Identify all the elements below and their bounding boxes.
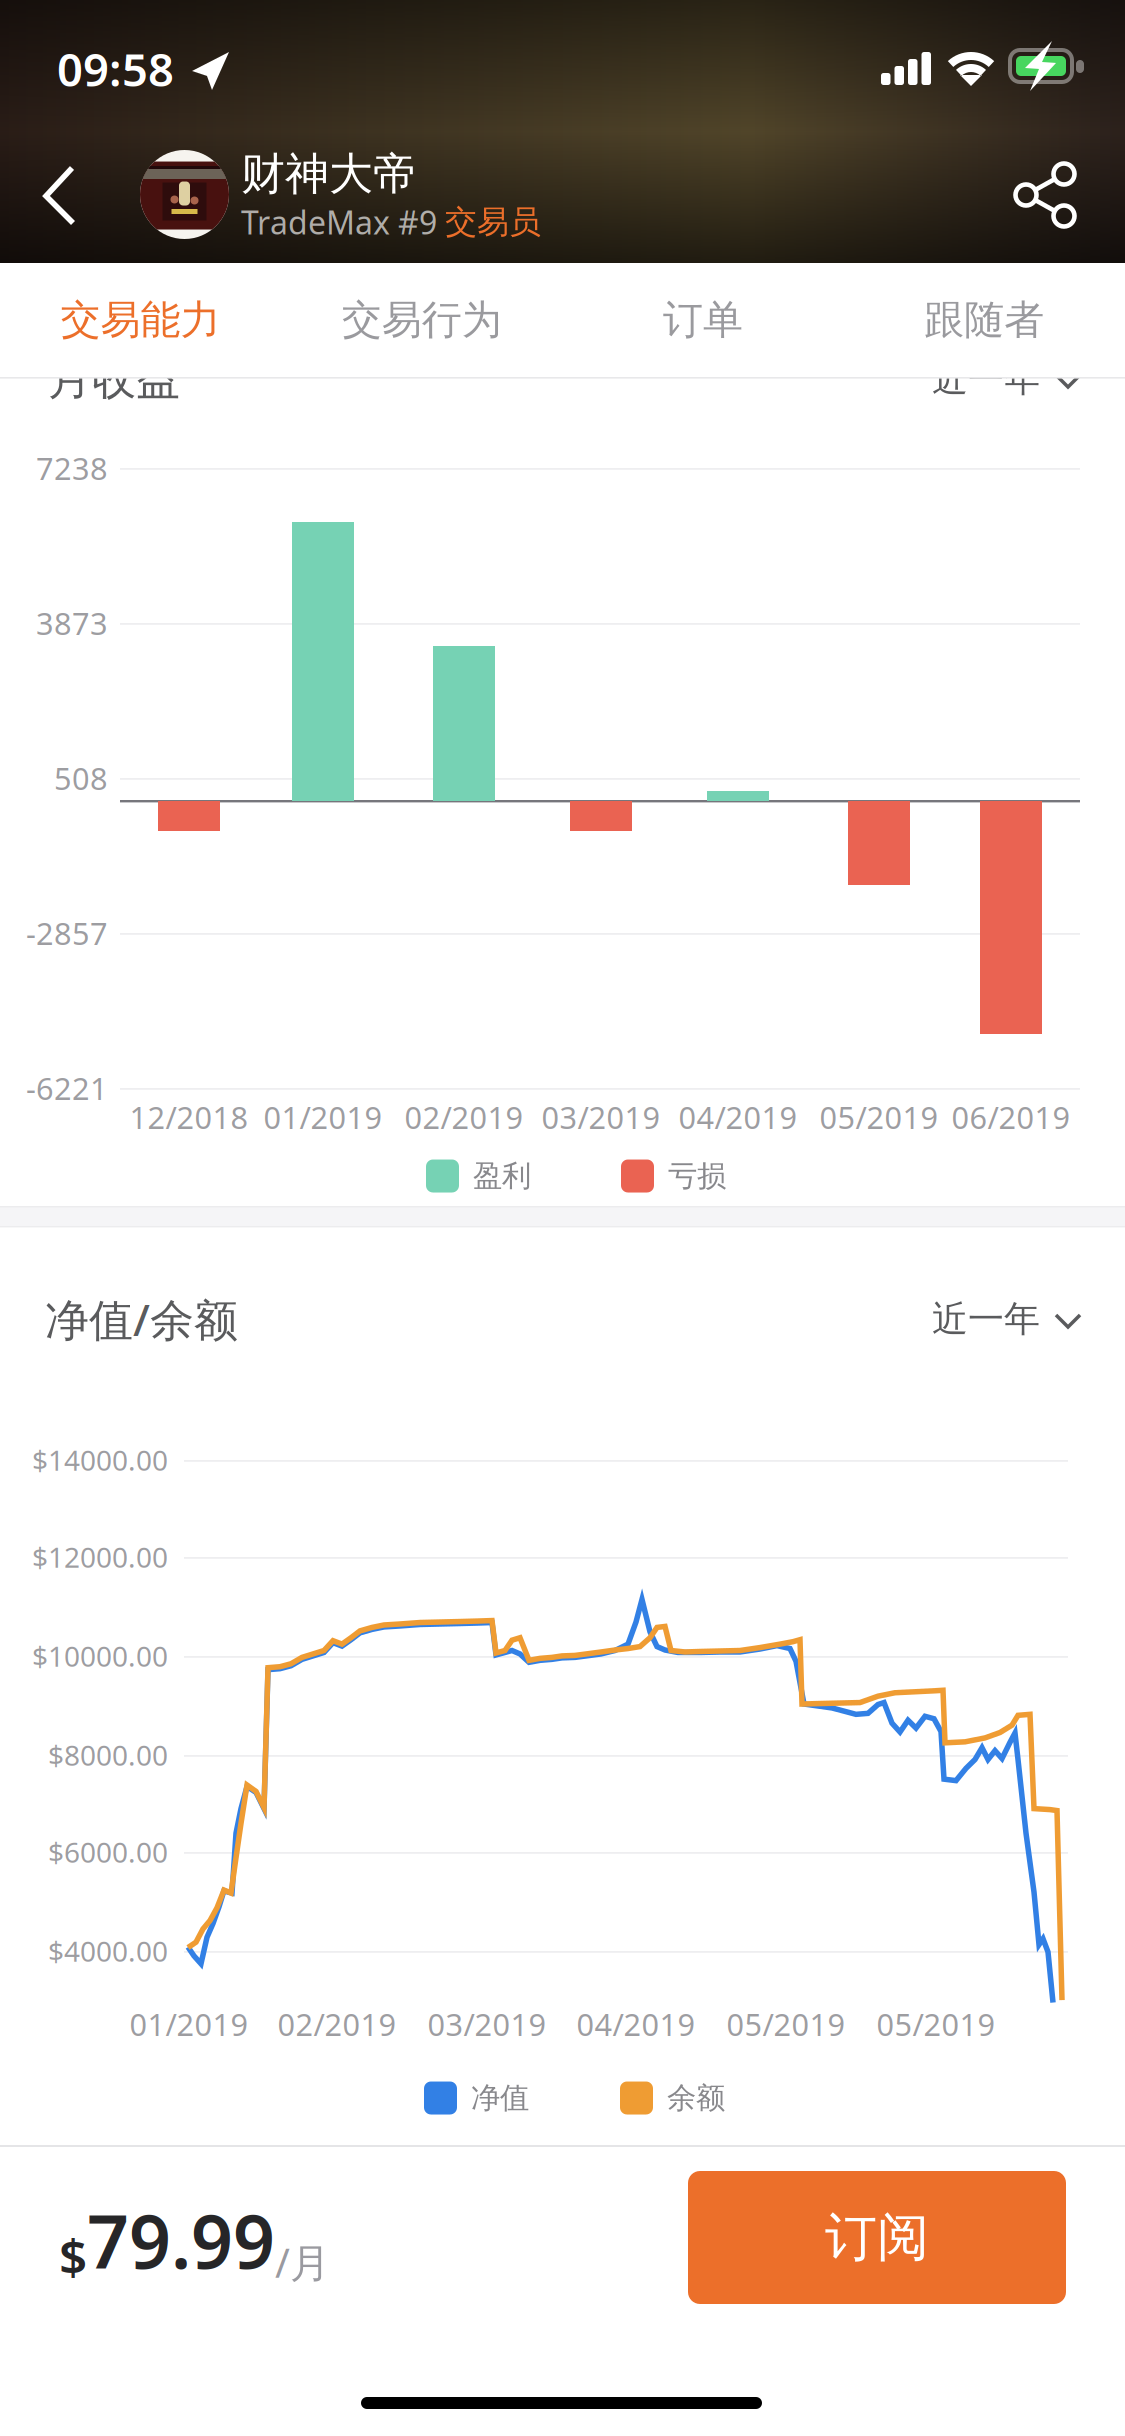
staticText: 01/2019 — [129, 2004, 248, 2044]
staticText: 亏损 — [668, 1158, 726, 1194]
button[interactable]: Back — [6, 140, 118, 252]
button[interactable]: 交易能力 — [0, 263, 281, 377]
staticText: 3873 — [36, 603, 108, 643]
staticText: 508 — [54, 758, 108, 798]
staticText: 04/2019 — [576, 2004, 695, 2044]
staticText: 月收益 — [48, 352, 180, 406]
staticText: $12000.00 — [32, 1538, 168, 1576]
button[interactable]: 订单 — [562, 263, 843, 377]
staticText: 近一年 — [932, 1297, 1040, 1341]
staticText: TradeMax #9 — [241, 201, 445, 243]
staticText: 7238 — [36, 448, 108, 488]
staticText: $8000.00 — [48, 1736, 168, 1774]
staticText: 交易员 — [445, 202, 541, 242]
staticText: $4000.00 — [48, 1932, 168, 1970]
staticText: -2857 — [26, 913, 108, 953]
staticText: 订阅 — [825, 2206, 929, 2269]
staticText: 05/2019 — [819, 1097, 938, 1137]
button[interactable]: 订阅 — [688, 2171, 1066, 2304]
staticText: 订单 — [663, 295, 743, 344]
staticText: /月 — [275, 2236, 330, 2289]
staticText: 净值/余额 — [45, 1290, 238, 1348]
staticText: 12/2018 — [129, 1097, 248, 1137]
staticText: -6221 — [26, 1068, 108, 1108]
staticText: 02/2019 — [404, 1097, 523, 1137]
staticText: 余额 — [667, 2080, 725, 2116]
staticText: 79.99 — [87, 2191, 275, 2289]
staticText: 财神大帝 — [241, 147, 417, 201]
staticText: 05/2019 — [876, 2004, 995, 2044]
staticText: 01/2019 — [263, 1097, 382, 1137]
staticText: 03/2019 — [427, 2004, 546, 2044]
staticText: $6000.00 — [48, 1833, 168, 1871]
staticText: 03/2019 — [541, 1097, 660, 1137]
staticText: 净值 — [471, 2080, 529, 2116]
staticText: 05/2019 — [726, 2004, 845, 2044]
staticText: 02/2019 — [277, 2004, 396, 2044]
button[interactable]: 跟随者 — [844, 263, 1125, 377]
staticText: $14000.00 — [32, 1441, 168, 1479]
button[interactable]: 交易行为 — [281, 263, 562, 377]
staticText: 近一年 — [932, 357, 1040, 401]
staticText: 交易能力 — [60, 295, 220, 344]
staticText: 跟随者 — [924, 295, 1044, 344]
staticText: 04/2019 — [678, 1097, 797, 1137]
button[interactable]: 近一年 — [932, 1273, 1108, 1365]
staticText: 盈利 — [473, 1158, 531, 1194]
button[interactable]: Share — [983, 136, 1095, 248]
staticText: 交易行为 — [342, 295, 502, 344]
staticText: 06/2019 — [951, 1097, 1070, 1137]
staticText: 09:58 — [57, 39, 174, 99]
staticText: $10000.00 — [32, 1637, 168, 1675]
staticText: $ — [59, 2223, 87, 2289]
